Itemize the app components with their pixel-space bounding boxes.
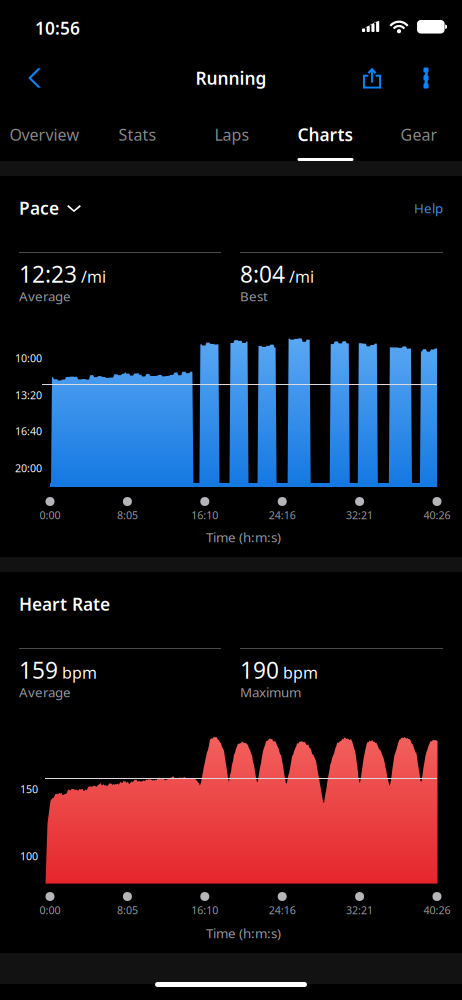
staticText: 10:00 bbox=[15, 351, 42, 365]
staticText: 40:26 bbox=[423, 508, 450, 522]
staticText: 190 bbox=[240, 655, 279, 685]
staticText: Stats bbox=[118, 124, 156, 145]
staticText: Running bbox=[195, 66, 266, 89]
staticText: Best bbox=[240, 287, 268, 305]
staticText: 32:21 bbox=[346, 508, 373, 522]
staticText: Gear bbox=[400, 124, 437, 145]
staticText: Heart Rate bbox=[19, 592, 110, 615]
staticText: 8:04 bbox=[240, 259, 285, 289]
staticText: 16:40 bbox=[15, 424, 42, 438]
staticText: 0:00 bbox=[39, 508, 60, 522]
button[interactable]: Stats bbox=[91, 106, 183, 161]
staticText: Time (h:m:s) bbox=[206, 924, 281, 942]
staticText: 8:05 bbox=[117, 508, 138, 522]
button[interactable]: More options bbox=[404, 56, 448, 100]
staticText: 13:20 bbox=[15, 388, 42, 402]
button[interactable]: Back bbox=[12, 56, 60, 100]
staticText: bpm bbox=[62, 662, 97, 683]
staticText: 24:16 bbox=[269, 903, 296, 917]
staticText: /mi bbox=[81, 266, 106, 287]
staticText: 100 bbox=[20, 849, 38, 863]
button[interactable]: Help bbox=[383, 198, 443, 218]
staticText: 40:26 bbox=[423, 903, 450, 917]
staticText: 8:05 bbox=[117, 903, 138, 917]
staticText: Maximum bbox=[240, 683, 301, 701]
button[interactable]: Gear bbox=[376, 106, 462, 161]
button[interactable]: Share bbox=[350, 56, 394, 100]
staticText: Average bbox=[19, 683, 71, 701]
button[interactable]: Overview bbox=[0, 106, 90, 161]
staticText: 24:16 bbox=[269, 508, 296, 522]
button[interactable]: Laps bbox=[186, 106, 278, 161]
button[interactable]: Charts bbox=[278, 106, 372, 161]
staticText: 12:23 bbox=[19, 259, 77, 289]
staticText: 16:10 bbox=[191, 903, 218, 917]
staticText: 0:00 bbox=[39, 903, 60, 917]
staticText: Time (h:m:s) bbox=[206, 528, 281, 546]
staticText: 10:56 bbox=[35, 16, 80, 39]
staticText: 16:10 bbox=[191, 508, 218, 522]
staticText: Charts bbox=[297, 123, 353, 146]
staticText: bpm bbox=[283, 662, 318, 683]
staticText: Average bbox=[19, 287, 71, 305]
staticText: /mi bbox=[289, 266, 314, 287]
staticText: Overview bbox=[9, 124, 79, 145]
button[interactable]: Pace bbox=[19, 197, 149, 219]
staticText: Laps bbox=[214, 124, 249, 145]
staticText: 20:00 bbox=[15, 461, 42, 475]
staticText: Pace bbox=[19, 196, 59, 219]
staticText: 32:21 bbox=[346, 903, 373, 917]
staticText: 159 bbox=[19, 655, 58, 685]
staticText: Help bbox=[414, 199, 443, 217]
staticText: 150 bbox=[20, 782, 38, 796]
